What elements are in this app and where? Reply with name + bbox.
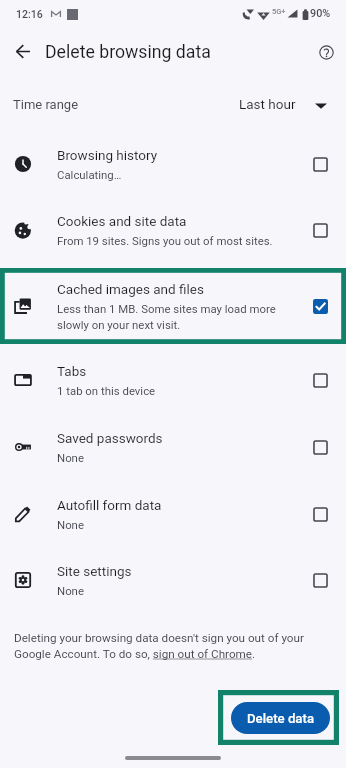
staticText: 12:16 [16,8,43,20]
button[interactable]: Site settings [0,553,346,620]
staticText: Delete browsing data [45,42,211,63]
button[interactable]: Browsing history [0,137,346,204]
button[interactable]: Site settings [308,568,332,592]
staticText: Cached images and files [57,281,204,297]
staticText: Saved passwords [57,430,163,446]
staticText: 5G+ [272,7,286,16]
button[interactable]: Cookies and site data [0,203,346,270]
button[interactable]: Cached images and files [308,294,332,318]
staticText: Less than 1 MB. Some sites may load more… [57,302,307,331]
staticText: Site settings [57,563,132,579]
button[interactable]: Cached images and files [0,271,346,354]
staticText: Deleting your browsing data doesn't sign… [14,631,309,661]
button[interactable]: Saved passwords [308,435,332,459]
button[interactable]: Cookies and site data [308,218,332,242]
staticText: None [57,518,307,531]
staticText: 1 tab on this device [57,384,307,397]
staticText: Time range [13,97,79,112]
button[interactable]: Browsing history [308,152,332,176]
button[interactable]: Autofill form data [0,487,346,554]
staticText: Browsing history [57,147,158,163]
button[interactable]: Saved passwords [0,420,346,487]
staticText: Delete data [247,711,315,726]
staticText: Calculating… [57,168,307,181]
button[interactable]: Back [5,35,40,70]
button[interactable]: Help [309,35,343,69]
staticText: None [57,584,307,597]
button[interactable]: Autofill form data [308,502,332,526]
staticText: None [57,451,307,464]
button[interactable]: Tabs [308,368,332,392]
button[interactable]: Delete data [231,702,330,734]
staticText: Autofill form data [57,497,162,513]
button[interactable]: Time range [0,86,346,124]
button[interactable]: Tabs [0,353,346,420]
staticText: Cookies and site data [57,213,187,229]
staticText: From 19 sites. Signs you out of most sit… [57,234,307,247]
staticText: Tabs [57,363,87,379]
staticText: 90% [310,7,331,20]
staticText: Last hour [239,96,296,112]
